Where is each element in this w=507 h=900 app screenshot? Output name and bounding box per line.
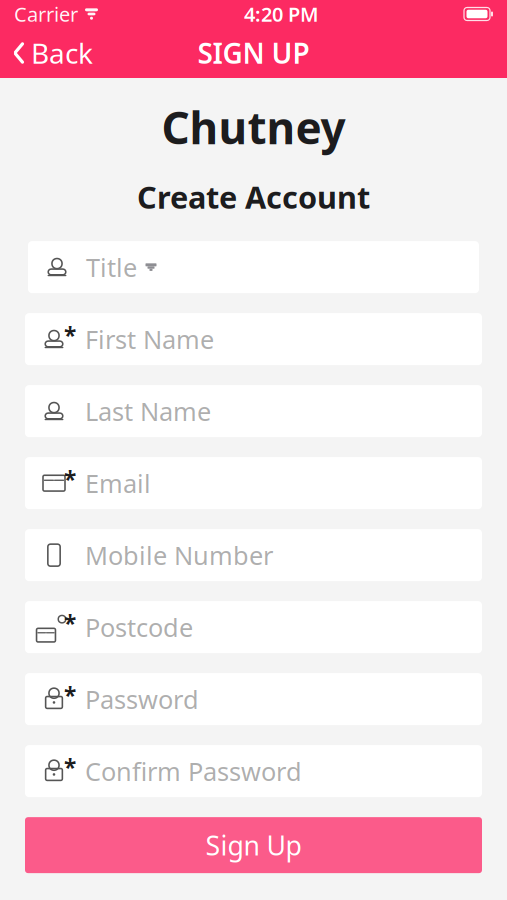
- staticText: *: [64, 320, 76, 350]
- staticText: Confirm Password: [85, 754, 302, 788]
- staticText: Back: [31, 34, 93, 72]
- button[interactable]: *: [25, 313, 482, 365]
- staticText: Create Account: [137, 176, 370, 217]
- button[interactable]: Last Name: [25, 385, 482, 437]
- button[interactable]: Title: [25, 241, 482, 293]
- button[interactable]: Back: [0, 26, 93, 80]
- button[interactable]: *: [25, 745, 482, 797]
- staticText: *: [64, 608, 76, 638]
- staticText: SIGN UP: [197, 34, 309, 72]
- button[interactable]: *: [25, 457, 482, 509]
- staticText: Last Name: [85, 394, 211, 428]
- staticText: Chutney: [161, 98, 345, 156]
- staticText: Password: [85, 682, 199, 716]
- staticText: Postcode: [85, 610, 193, 644]
- staticText: Email: [85, 466, 151, 500]
- button[interactable]: Mobile Number: [25, 529, 482, 581]
- staticText: Sign Up: [205, 827, 301, 863]
- staticText: *: [64, 464, 76, 494]
- staticText: 4:20 PM: [244, 1, 319, 27]
- button[interactable]: *: [25, 601, 482, 653]
- staticText: Carrier: [14, 1, 78, 27]
- button[interactable]: *: [25, 673, 482, 725]
- staticText: *: [64, 680, 76, 710]
- staticText: Title: [86, 250, 137, 284]
- staticText: *: [64, 752, 76, 782]
- staticText: First Name: [85, 322, 214, 356]
- staticText: Mobile Number: [85, 538, 273, 572]
- button[interactable]: Sign Up: [25, 817, 482, 873]
